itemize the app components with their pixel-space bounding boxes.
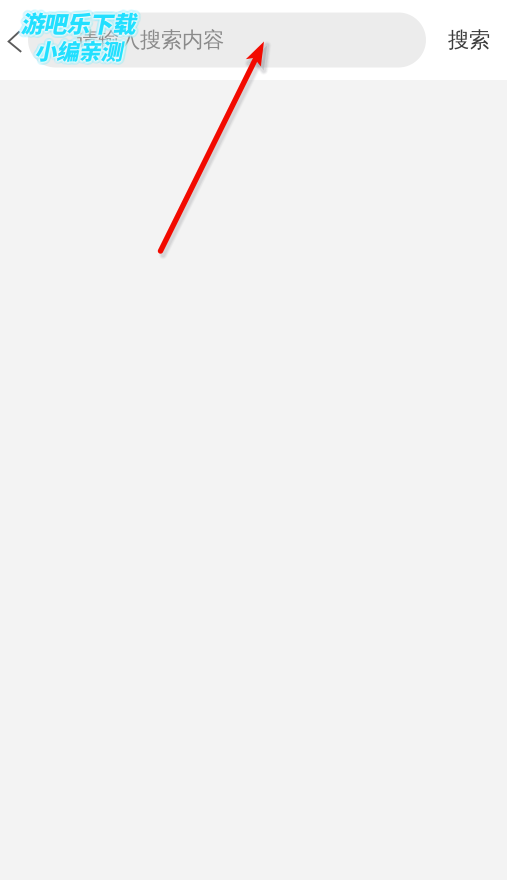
- staticText: 小编亲测: [35, 34, 123, 66]
- staticText: 游吧乐下载: [23, 6, 138, 40]
- staticText: 游吧乐下载: [18, 6, 133, 39]
- staticText: 小编亲测: [34, 32, 122, 64]
- staticText: 游吧乐下载: [19, 5, 134, 38]
- staticText: 游吧乐下载: [21, 7, 136, 41]
- staticText: 小编亲测: [35, 31, 123, 63]
- staticText: 游吧乐下载: [22, 6, 137, 40]
- staticText: 小编亲测: [33, 33, 121, 65]
- staticText: 小编亲测: [33, 36, 121, 68]
- staticText: 游吧乐下载: [19, 5, 134, 39]
- staticText: 游吧乐下载: [21, 3, 136, 36]
- staticText: 游吧乐下载: [23, 4, 138, 37]
- staticText: 游吧乐下载: [18, 6, 133, 40]
- staticText: 游吧乐下载: [19, 9, 134, 42]
- staticText: 游吧乐下载: [18, 5, 133, 39]
- staticText: 小编亲测: [35, 36, 123, 68]
- staticText: 小编亲测: [35, 35, 123, 67]
- staticText: 小编亲测: [31, 35, 119, 67]
- staticText: 游吧乐下载: [22, 3, 137, 37]
- staticText: 游吧乐下载: [19, 8, 134, 42]
- staticText: 游吧乐下载: [17, 7, 132, 41]
- button[interactable]: 搜索: [426, 0, 507, 80]
- staticText: 小编亲测: [34, 34, 122, 66]
- staticText: 小编亲测: [32, 35, 120, 67]
- staticText: 游吧乐下载: [20, 3, 135, 37]
- staticText: 游吧乐下载: [17, 8, 132, 42]
- staticText: 小编亲测: [35, 32, 123, 64]
- staticText: 游吧乐下载: [22, 7, 137, 41]
- staticText: 小编亲测: [33, 33, 121, 65]
- staticText: 游吧乐下载: [22, 7, 137, 40]
- staticText: 小编亲测: [33, 35, 121, 67]
- staticText: 游吧乐下载: [21, 5, 136, 39]
- staticText: 小编亲测: [37, 35, 125, 67]
- staticText: 游吧乐下载: [21, 9, 136, 43]
- staticText: 游吧乐下载: [20, 4, 135, 38]
- staticText: 小编亲测: [32, 35, 120, 67]
- staticText: 游吧乐下载: [22, 5, 137, 39]
- staticText: 小编亲测: [33, 31, 121, 63]
- staticText: 小编亲测: [32, 34, 120, 66]
- staticText: 小编亲测: [33, 31, 121, 63]
- staticText: 游吧乐下载: [21, 8, 136, 42]
- staticText: 小编亲测: [35, 34, 123, 66]
- staticText: 游吧乐下载: [17, 5, 132, 39]
- staticText: 小编亲测: [36, 37, 124, 69]
- staticText: 游吧乐下载: [17, 6, 132, 40]
- staticText: 小编亲测: [36, 34, 124, 66]
- staticText: 游吧乐下载: [21, 5, 136, 39]
- staticText: 小编亲测: [33, 34, 121, 66]
- staticText: 游吧乐下载: [20, 9, 135, 43]
- staticText: 游吧乐下载: [23, 4, 138, 38]
- staticText: 小编亲测: [33, 35, 121, 67]
- staticText: 游吧乐下载: [20, 8, 135, 42]
- button[interactable]: 请输入搜索内容: [28, 12, 426, 67]
- staticText: 小编亲测: [35, 37, 123, 69]
- staticText: 小编亲测: [31, 33, 119, 65]
- staticText: 小编亲测: [35, 37, 123, 69]
- staticText: 小编亲测: [35, 35, 123, 67]
- staticText: 游吧乐下载: [19, 7, 134, 41]
- staticText: 小编亲测: [32, 34, 120, 66]
- staticText: 小编亲测: [32, 36, 120, 67]
- staticText: 游吧乐下载: [21, 9, 136, 42]
- staticText: 小编亲测: [31, 36, 119, 68]
- staticText: 小编亲测: [34, 31, 122, 63]
- staticText: 游吧乐下载: [20, 7, 135, 41]
- staticText: 小编亲测: [32, 33, 120, 65]
- staticText: 小编亲测: [35, 32, 123, 64]
- staticText: 小编亲测: [34, 33, 122, 65]
- staticText: 小编亲测: [37, 32, 125, 64]
- staticText: 小编亲测: [33, 36, 121, 68]
- staticText: 游吧乐下载: [18, 5, 133, 38]
- staticText: 游吧乐下载: [23, 7, 138, 41]
- staticText: 游吧乐下载: [19, 5, 134, 39]
- staticText: 小编亲测: [33, 32, 121, 64]
- staticText: 小编亲测: [33, 32, 121, 64]
- staticText: 游吧乐下载: [20, 7, 135, 41]
- staticText: 游吧乐下载: [23, 8, 138, 42]
- staticText: 游吧乐下载: [23, 6, 138, 39]
- staticText: 小编亲测: [37, 34, 125, 66]
- staticText: 小编亲测: [31, 34, 119, 66]
- staticText: 游吧乐下载: [20, 5, 135, 38]
- staticText: 小编亲测: [34, 35, 122, 67]
- staticText: 小编亲测: [33, 37, 121, 69]
- staticText: 游吧乐下载: [22, 6, 137, 39]
- staticText: 小编亲测: [36, 35, 124, 67]
- staticText: 游吧乐下载: [19, 9, 134, 43]
- staticText: 小编亲测: [34, 36, 122, 68]
- button[interactable]: Back: [0, 0, 28, 80]
- staticText: 小编亲测: [37, 36, 125, 67]
- staticText: 小编亲测: [33, 32, 121, 64]
- staticText: 游吧乐下载: [18, 8, 133, 42]
- staticText: 小编亲测: [33, 35, 121, 67]
- staticText: 游吧乐下载: [18, 4, 133, 38]
- staticText: 游吧乐下载: [21, 6, 136, 39]
- staticText: 游吧乐下载: [18, 7, 133, 40]
- staticText: 小编亲测: [33, 36, 121, 68]
- staticText: 游吧乐下载: [20, 8, 135, 42]
- staticText: 小编亲测: [36, 36, 124, 67]
- staticText: 游吧乐下载: [20, 2, 135, 36]
- staticText: 小编亲测: [37, 36, 125, 68]
